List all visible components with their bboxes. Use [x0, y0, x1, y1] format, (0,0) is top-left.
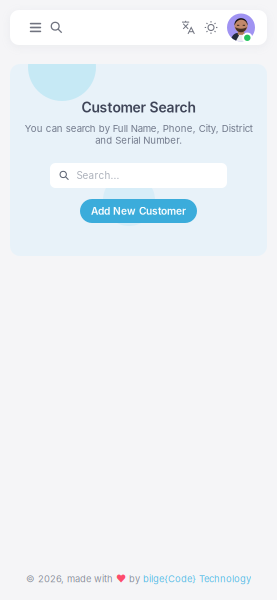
button[interactable]: Translate [178, 15, 198, 39]
button[interactable]: Add New Customer [80, 199, 197, 223]
button[interactable]: Account [227, 13, 255, 41]
staticText: bilge{Code} Technology [143, 573, 251, 585]
staticText: Customer Search [81, 99, 195, 116]
staticText: Add New Customer [91, 205, 186, 217]
staticText: You can search by Full Name, Phone, City… [24, 123, 252, 146]
button[interactable]: Menu [26, 15, 45, 39]
staticText: ♥ [116, 573, 126, 585]
button[interactable]: Search [47, 15, 66, 39]
button[interactable]: Appearance [201, 15, 221, 39]
button[interactable]: bilge{Code} Technology [143, 573, 251, 585]
staticText: by [126, 573, 143, 585]
staticText: Search... [76, 169, 119, 181]
staticText: © 2026, made with [26, 573, 116, 585]
